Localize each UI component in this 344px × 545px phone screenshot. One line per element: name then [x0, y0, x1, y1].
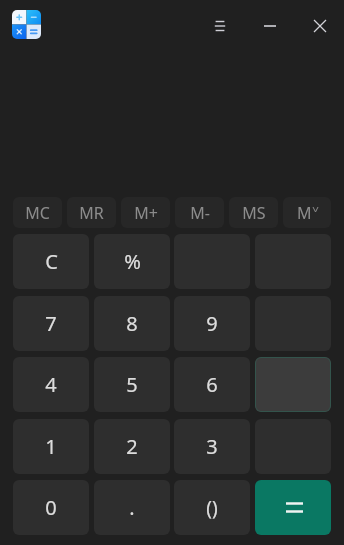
staticText: 2	[126, 433, 138, 460]
staticText: 4	[45, 371, 57, 398]
button[interactable]: %	[94, 234, 170, 289]
staticText: MC	[25, 202, 50, 224]
staticText: M-	[190, 202, 210, 224]
button[interactable]: 1	[13, 419, 89, 474]
staticText: C	[45, 248, 58, 275]
staticText: 0	[45, 494, 57, 521]
button[interactable]: C	[13, 234, 89, 289]
button[interactable]: 2	[94, 419, 170, 474]
button[interactable]: 8	[94, 296, 170, 351]
staticText: 7	[45, 310, 57, 337]
staticText: MR	[79, 202, 104, 224]
button[interactable]: Minimize	[248, 4, 292, 48]
button[interactable]: 5	[94, 357, 170, 412]
button[interactable]: MS	[229, 197, 278, 228]
button[interactable]: 0	[13, 480, 89, 535]
button[interactable]: 3	[174, 419, 250, 474]
staticText: 6	[206, 371, 218, 398]
button[interactable]: Close	[298, 4, 342, 48]
button[interactable]: MR	[67, 197, 116, 228]
button[interactable]: M+	[121, 197, 170, 228]
button[interactable]: ()	[174, 480, 250, 535]
staticText: 8	[126, 310, 138, 337]
staticText: M	[297, 202, 312, 224]
staticText: %	[124, 248, 141, 275]
staticText: 5	[126, 371, 138, 398]
staticText: M+	[134, 202, 158, 224]
staticText: ()	[206, 495, 218, 521]
button[interactable]: 4	[13, 357, 89, 412]
staticText: .	[129, 494, 135, 521]
button[interactable]: Minus	[255, 357, 331, 412]
staticText: 1	[45, 433, 57, 460]
button[interactable]: 6	[174, 357, 250, 412]
button[interactable]: Menu	[198, 4, 242, 48]
button[interactable]: Equals	[255, 480, 331, 535]
staticText: MS	[242, 202, 266, 224]
button[interactable]: .	[94, 480, 170, 535]
staticText: 3	[206, 433, 218, 460]
staticText: 9	[206, 310, 218, 337]
button[interactable]: Open memory	[283, 197, 331, 228]
button[interactable]: M-	[175, 197, 224, 228]
button[interactable]: 7	[13, 296, 89, 351]
button[interactable]: 9	[174, 296, 250, 351]
button[interactable]: MC	[13, 197, 62, 228]
